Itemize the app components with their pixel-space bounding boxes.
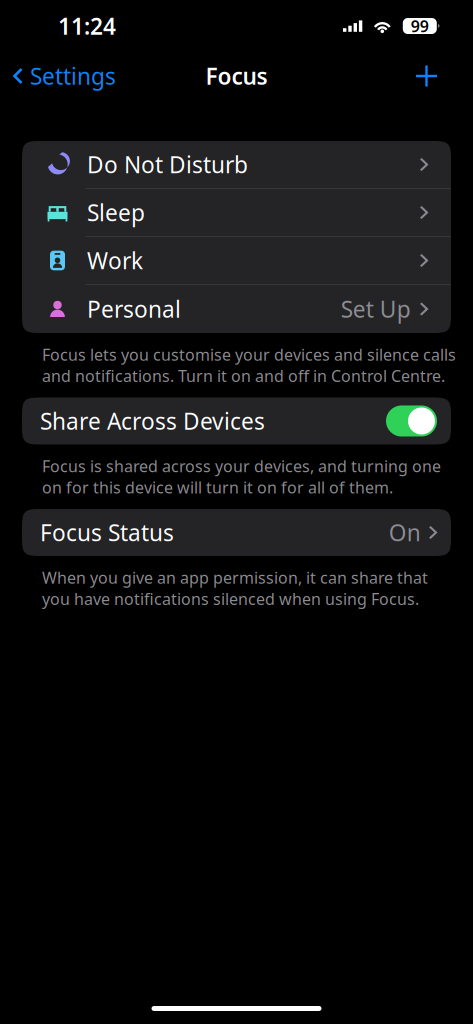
- staticText: Focus is shared across your devices, and…: [42, 455, 441, 498]
- staticText: Do Not Disturb: [87, 149, 248, 179]
- staticText: On: [389, 517, 421, 547]
- staticText: Focus lets you customise your devices an…: [42, 344, 456, 386]
- staticText: Personal: [87, 294, 181, 324]
- staticText: Set Up: [341, 294, 411, 324]
- button[interactable]: Work: [22, 237, 451, 284]
- staticText: Focus: [205, 61, 267, 91]
- staticText: Work: [87, 245, 143, 275]
- staticText: 99: [411, 15, 429, 37]
- button[interactable]: Sleep: [22, 189, 451, 236]
- staticText: Focus Status: [40, 517, 174, 547]
- button[interactable]: Settings: [0, 61, 116, 91]
- staticText: Sleep: [87, 197, 145, 227]
- staticText: Settings: [30, 61, 116, 91]
- staticText: When you give an app permission, it can …: [42, 567, 428, 609]
- button[interactable]: Add Focus: [402, 53, 473, 98]
- staticText: Share Across Devices: [40, 406, 265, 436]
- button[interactable]: Focus Status: [22, 509, 451, 556]
- button[interactable]: Share Across Devices: [22, 397, 451, 444]
- button[interactable]: Personal: [22, 285, 451, 333]
- staticText: 11:24: [58, 11, 116, 41]
- button[interactable]: Do Not Disturb: [22, 141, 451, 188]
